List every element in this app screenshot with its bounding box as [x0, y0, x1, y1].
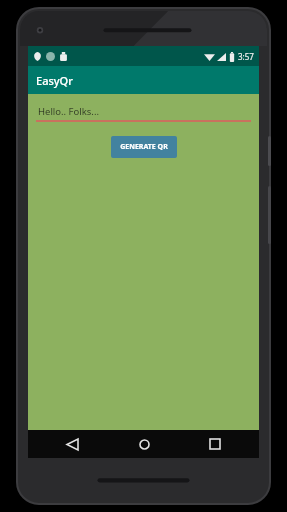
button[interactable]: GENERATE QR — [111, 136, 177, 158]
button[interactable]: Hello.. Folks... — [36, 105, 251, 122]
staticText: 3:57 — [238, 51, 254, 62]
button[interactable]: Recents — [187, 430, 243, 458]
staticText: GENERATE QR — [120, 142, 168, 152]
staticText: EasyQr — [36, 73, 73, 88]
button[interactable]: Back — [44, 430, 100, 458]
button[interactable]: Home — [116, 430, 172, 458]
staticText: Hello.. Folks... — [38, 105, 99, 118]
